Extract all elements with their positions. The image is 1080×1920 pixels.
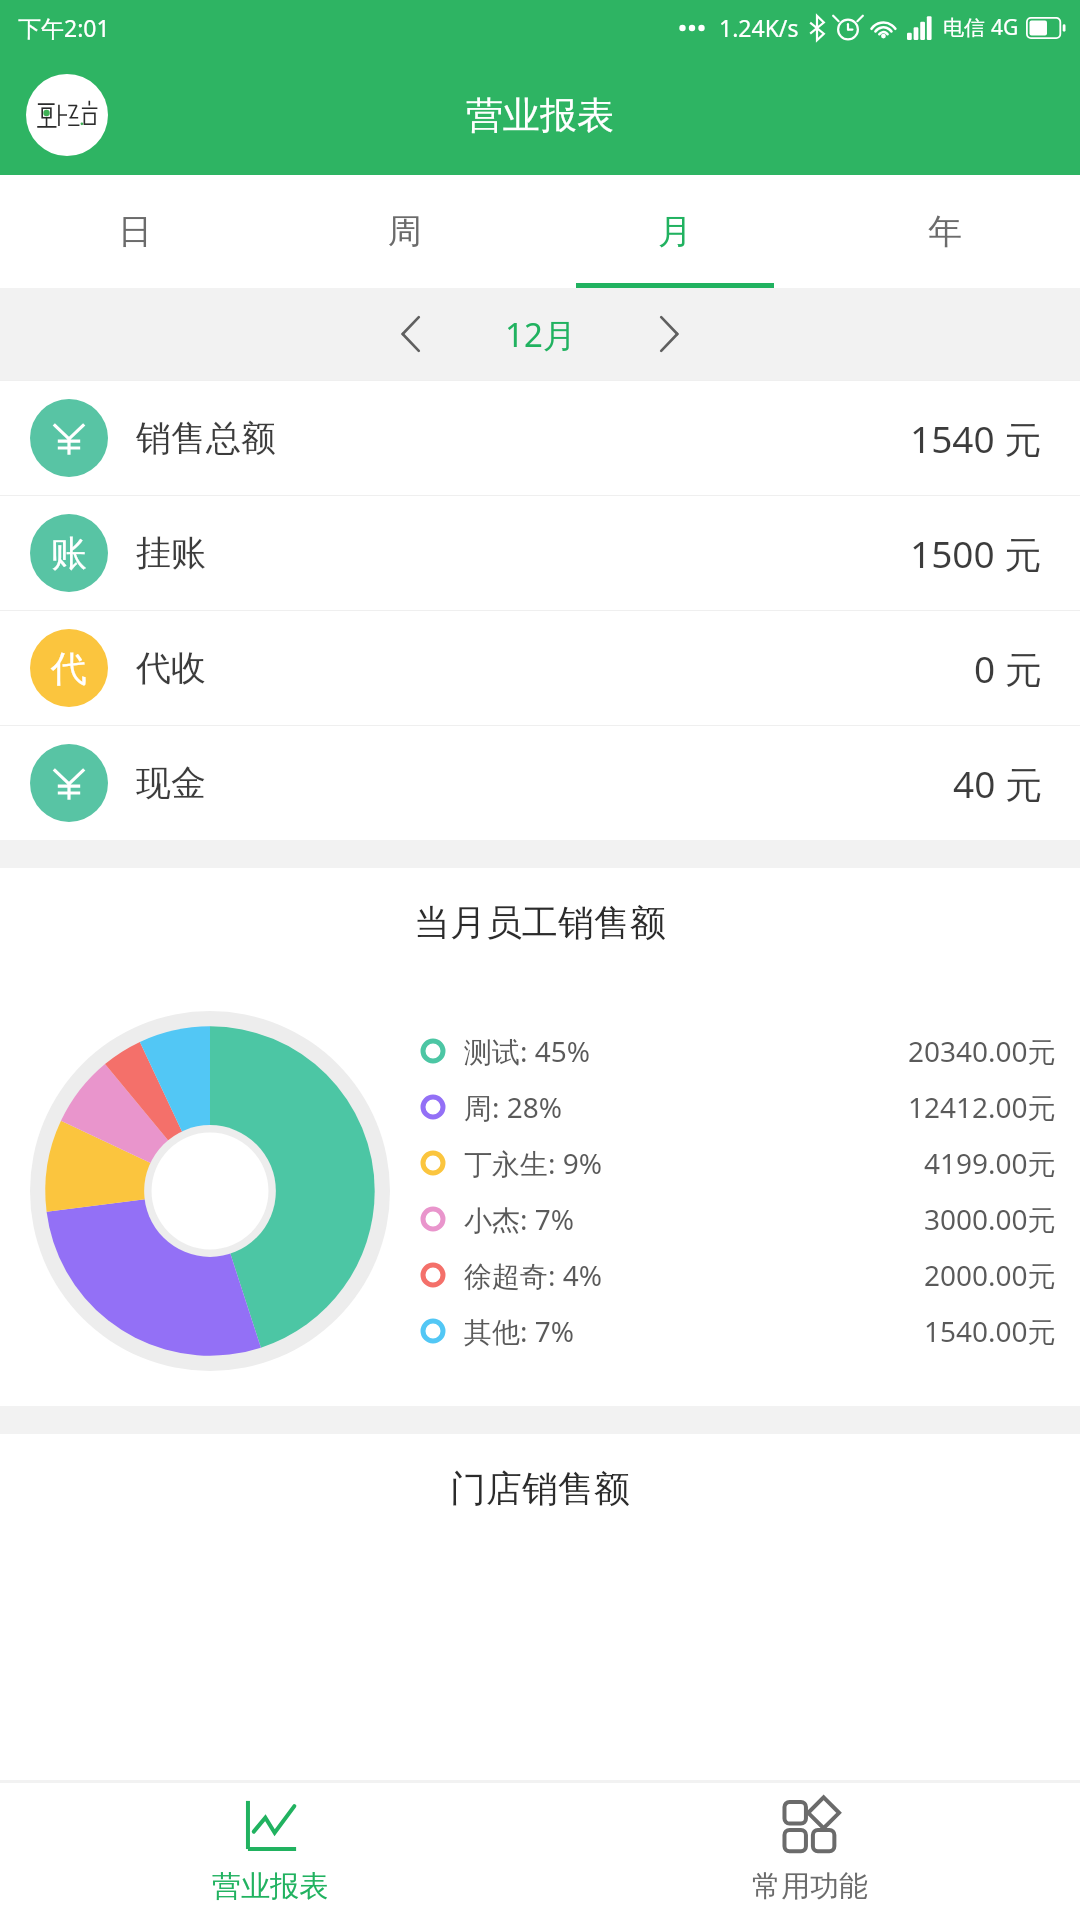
staticText: 4G — [991, 13, 1019, 42]
staticText: 营业报表 — [212, 1868, 328, 1905]
staticText: 1.24K/s — [719, 12, 799, 43]
button[interactable]: 年 — [810, 175, 1080, 288]
staticText: 营业报表 — [466, 92, 614, 139]
staticText: 常用功能 — [752, 1868, 868, 1905]
button[interactable]: Previous month — [372, 288, 450, 380]
staticText: 其他: 7% — [464, 1312, 575, 1350]
staticText: 当月员工销售额 — [414, 900, 666, 945]
button[interactable]: 现金 — [0, 726, 1080, 840]
staticText: 12412.00元 — [908, 1088, 1056, 1126]
staticText: 电信 — [943, 15, 985, 41]
staticText: 年 — [928, 210, 962, 253]
button[interactable]: 常用功能 — [540, 1783, 1080, 1920]
staticText: 20340.00元 — [908, 1032, 1056, 1070]
button[interactable]: 代 — [0, 611, 1080, 725]
staticText: 测试: 45% — [464, 1032, 591, 1070]
staticText: 0 元 — [974, 643, 1042, 694]
staticText: 2000.00元 — [924, 1256, 1056, 1294]
staticText: 周 — [388, 210, 422, 253]
staticText: 徐超奇: 4% — [464, 1256, 603, 1294]
staticText: 销售总额 — [136, 416, 276, 460]
staticText: 小杰: 7% — [464, 1200, 575, 1238]
button[interactable]: 月 — [540, 175, 810, 288]
staticText: 3000.00元 — [924, 1200, 1056, 1238]
staticText: 1500 元 — [910, 528, 1042, 579]
staticText: 40 元 — [953, 758, 1042, 809]
staticText: 账 — [51, 531, 87, 576]
button[interactable]: 日 — [0, 175, 270, 288]
button[interactable]: 12月 — [450, 288, 630, 380]
staticText: 12月 — [505, 312, 576, 357]
staticText: 月 — [658, 210, 692, 253]
staticText: 周: 28% — [464, 1088, 563, 1126]
staticText: 代收 — [136, 646, 206, 690]
staticText: 1540.00元 — [924, 1312, 1056, 1350]
button[interactable]: 账 — [0, 496, 1080, 610]
staticText: 挂账 — [136, 531, 206, 575]
staticText: 现金 — [136, 761, 206, 805]
staticText: 下午2:01 — [18, 12, 110, 43]
button[interactable]: 销售总额 — [0, 381, 1080, 495]
staticText: 日 — [118, 210, 152, 253]
button[interactable]: Next month — [630, 288, 708, 380]
button[interactable]: Logo — [26, 74, 108, 156]
staticText: 1540 元 — [910, 413, 1042, 464]
staticText: 代 — [51, 646, 87, 691]
staticText: 门店销售额 — [450, 1466, 630, 1511]
button[interactable]: 周 — [270, 175, 540, 288]
button[interactable]: 营业报表 — [0, 1783, 540, 1920]
staticText: 丁永生: 9% — [464, 1144, 603, 1182]
staticText: 4199.00元 — [924, 1144, 1056, 1182]
